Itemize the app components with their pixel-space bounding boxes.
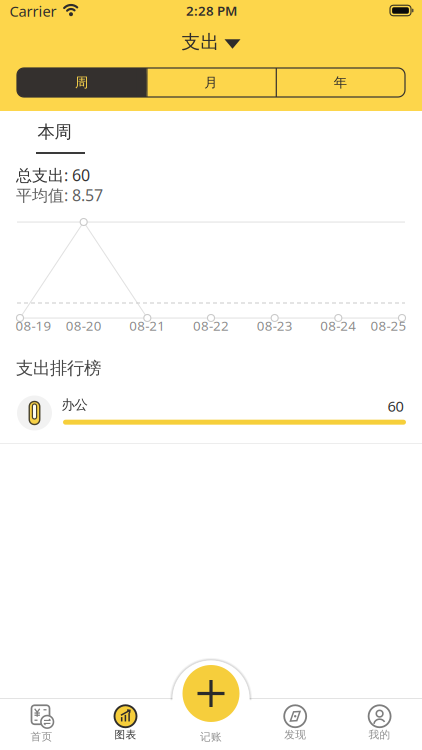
- staticText: 08-25: [370, 317, 406, 334]
- staticText: 周: [75, 74, 88, 91]
- staticText: Carrier: [9, 1, 56, 21]
- staticText: 08-22: [193, 317, 229, 334]
- button[interactable]: 支出: [166, 28, 256, 56]
- button[interactable]: 记账: [182, 665, 239, 722]
- staticText: 办公: [61, 396, 87, 413]
- button[interactable]: 记账: [181, 730, 241, 744]
- staticText: 60: [387, 396, 403, 416]
- staticText: 首页: [30, 730, 52, 743]
- staticText: 08-21: [129, 317, 165, 334]
- button[interactable]: 月: [146, 68, 275, 97]
- staticText: 支出排行榜: [16, 357, 101, 379]
- staticText: 08-23: [257, 317, 293, 334]
- staticText: 08-24: [320, 317, 356, 334]
- button[interactable]: 我的: [340, 703, 420, 743]
- staticText: 记账: [200, 730, 222, 743]
- staticText: 发现: [284, 728, 306, 741]
- button[interactable]: 发现: [255, 703, 335, 743]
- staticText: 08-20: [66, 317, 102, 334]
- staticText: 2:28 PM: [186, 2, 237, 19]
- button[interactable]: 本周: [36, 119, 85, 154]
- staticText: 支出: [181, 30, 219, 53]
- staticText: 年: [334, 74, 347, 91]
- staticText: 总支出: 60: [16, 164, 90, 186]
- button[interactable]: 首页: [1, 703, 81, 743]
- staticText: 本周: [37, 121, 71, 143]
- staticText: 08-19: [15, 317, 51, 334]
- staticText: 平均值: 8.57: [16, 184, 103, 206]
- staticText: 图表: [114, 728, 136, 741]
- staticText: 我的: [369, 728, 391, 741]
- button[interactable]: 年: [276, 68, 405, 97]
- button[interactable]: 周: [17, 68, 146, 97]
- staticText: 月: [204, 74, 217, 91]
- button[interactable]: 图表: [85, 703, 165, 743]
- button[interactable]: 办公: [16, 395, 422, 435]
